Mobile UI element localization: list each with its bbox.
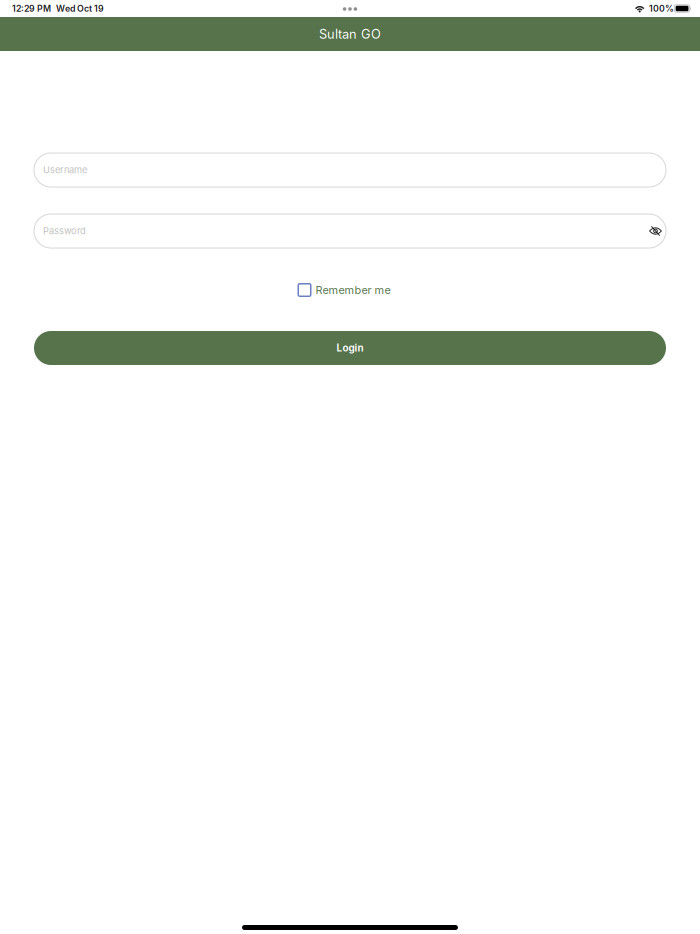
- staticText: Sultan GO: [319, 26, 381, 42]
- button[interactable]: Login: [34, 331, 666, 365]
- button[interactable]: Username: [34, 153, 666, 187]
- button[interactable]: Password: [34, 214, 666, 248]
- staticText: Remember me: [315, 283, 390, 297]
- button[interactable]: Remember me: [297, 283, 390, 297]
- staticText: 100%: [649, 3, 674, 14]
- button[interactable]: Show password: [642, 218, 668, 244]
- staticText: Password: [43, 225, 86, 236]
- staticText: Wed Oct 19: [56, 3, 104, 14]
- staticText: 12:29 PM: [12, 3, 51, 14]
- staticText: Username: [43, 164, 87, 175]
- staticText: Login: [336, 342, 363, 354]
